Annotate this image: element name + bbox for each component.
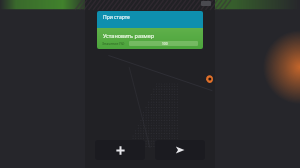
staticText: Установить размер <box>103 32 155 39</box>
staticText: Значение (%) <box>102 41 125 46</box>
button[interactable]: При старте <box>97 11 203 28</box>
button[interactable]: Send <box>155 140 205 160</box>
button[interactable]: Установить размер <box>97 28 203 49</box>
button[interactable]: Add <box>95 140 145 160</box>
button[interactable]: 100 <box>129 41 198 46</box>
staticText: При старте <box>103 14 130 21</box>
staticText: 100 <box>162 42 168 46</box>
